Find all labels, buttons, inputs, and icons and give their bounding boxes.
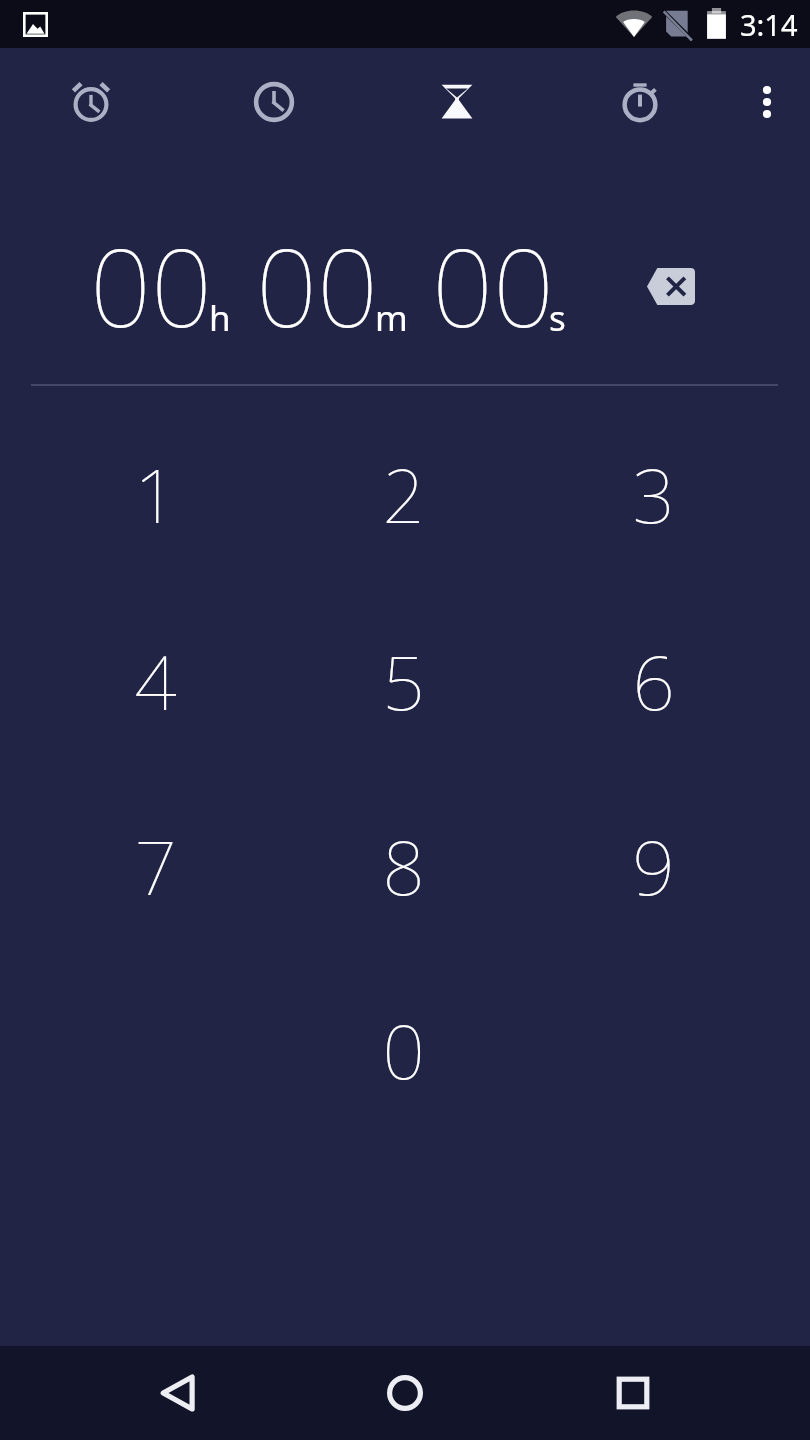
staticText: 00 [432, 213, 554, 359]
staticText: 8 [382, 816, 425, 917]
button[interactable]: 5 [279, 589, 527, 773]
button[interactable]: 3 [529, 402, 777, 586]
staticText: 00 [90, 213, 212, 359]
button[interactable]: 0 [279, 958, 527, 1142]
button[interactable]: 1 [31, 402, 279, 586]
button[interactable]: Recent apps [587, 1347, 679, 1439]
staticText: 2 [382, 444, 425, 545]
button[interactable]: Clock [228, 56, 320, 148]
button[interactable]: Home [359, 1347, 451, 1439]
button[interactable]: 7 [31, 774, 279, 958]
staticText: 6 [632, 631, 675, 732]
button[interactable]: Timer [411, 57, 503, 149]
staticText: s [549, 294, 566, 342]
staticText: 00 [256, 213, 378, 359]
button[interactable]: 9 [529, 774, 777, 958]
button[interactable]: More options [721, 56, 810, 148]
staticText: 0 [382, 1000, 425, 1101]
staticText: 5 [382, 631, 425, 732]
staticText: 3:14 [740, 5, 798, 44]
button[interactable]: 4 [31, 589, 279, 773]
button[interactable]: 6 [529, 589, 777, 773]
staticText: m [375, 294, 408, 342]
button[interactable]: 8 [279, 774, 527, 958]
button[interactable]: Stopwatch [594, 56, 686, 148]
staticText: 7 [134, 816, 177, 917]
button[interactable]: 2 [279, 402, 527, 586]
staticText: 3 [632, 444, 675, 545]
staticText: h [209, 294, 231, 342]
staticText: 9 [632, 816, 675, 917]
button[interactable]: Back [133, 1347, 225, 1439]
staticText: 4 [134, 631, 177, 732]
button[interactable]: Delete [623, 246, 719, 326]
button[interactable]: Alarm [45, 56, 137, 148]
staticText: 1 [134, 444, 177, 545]
